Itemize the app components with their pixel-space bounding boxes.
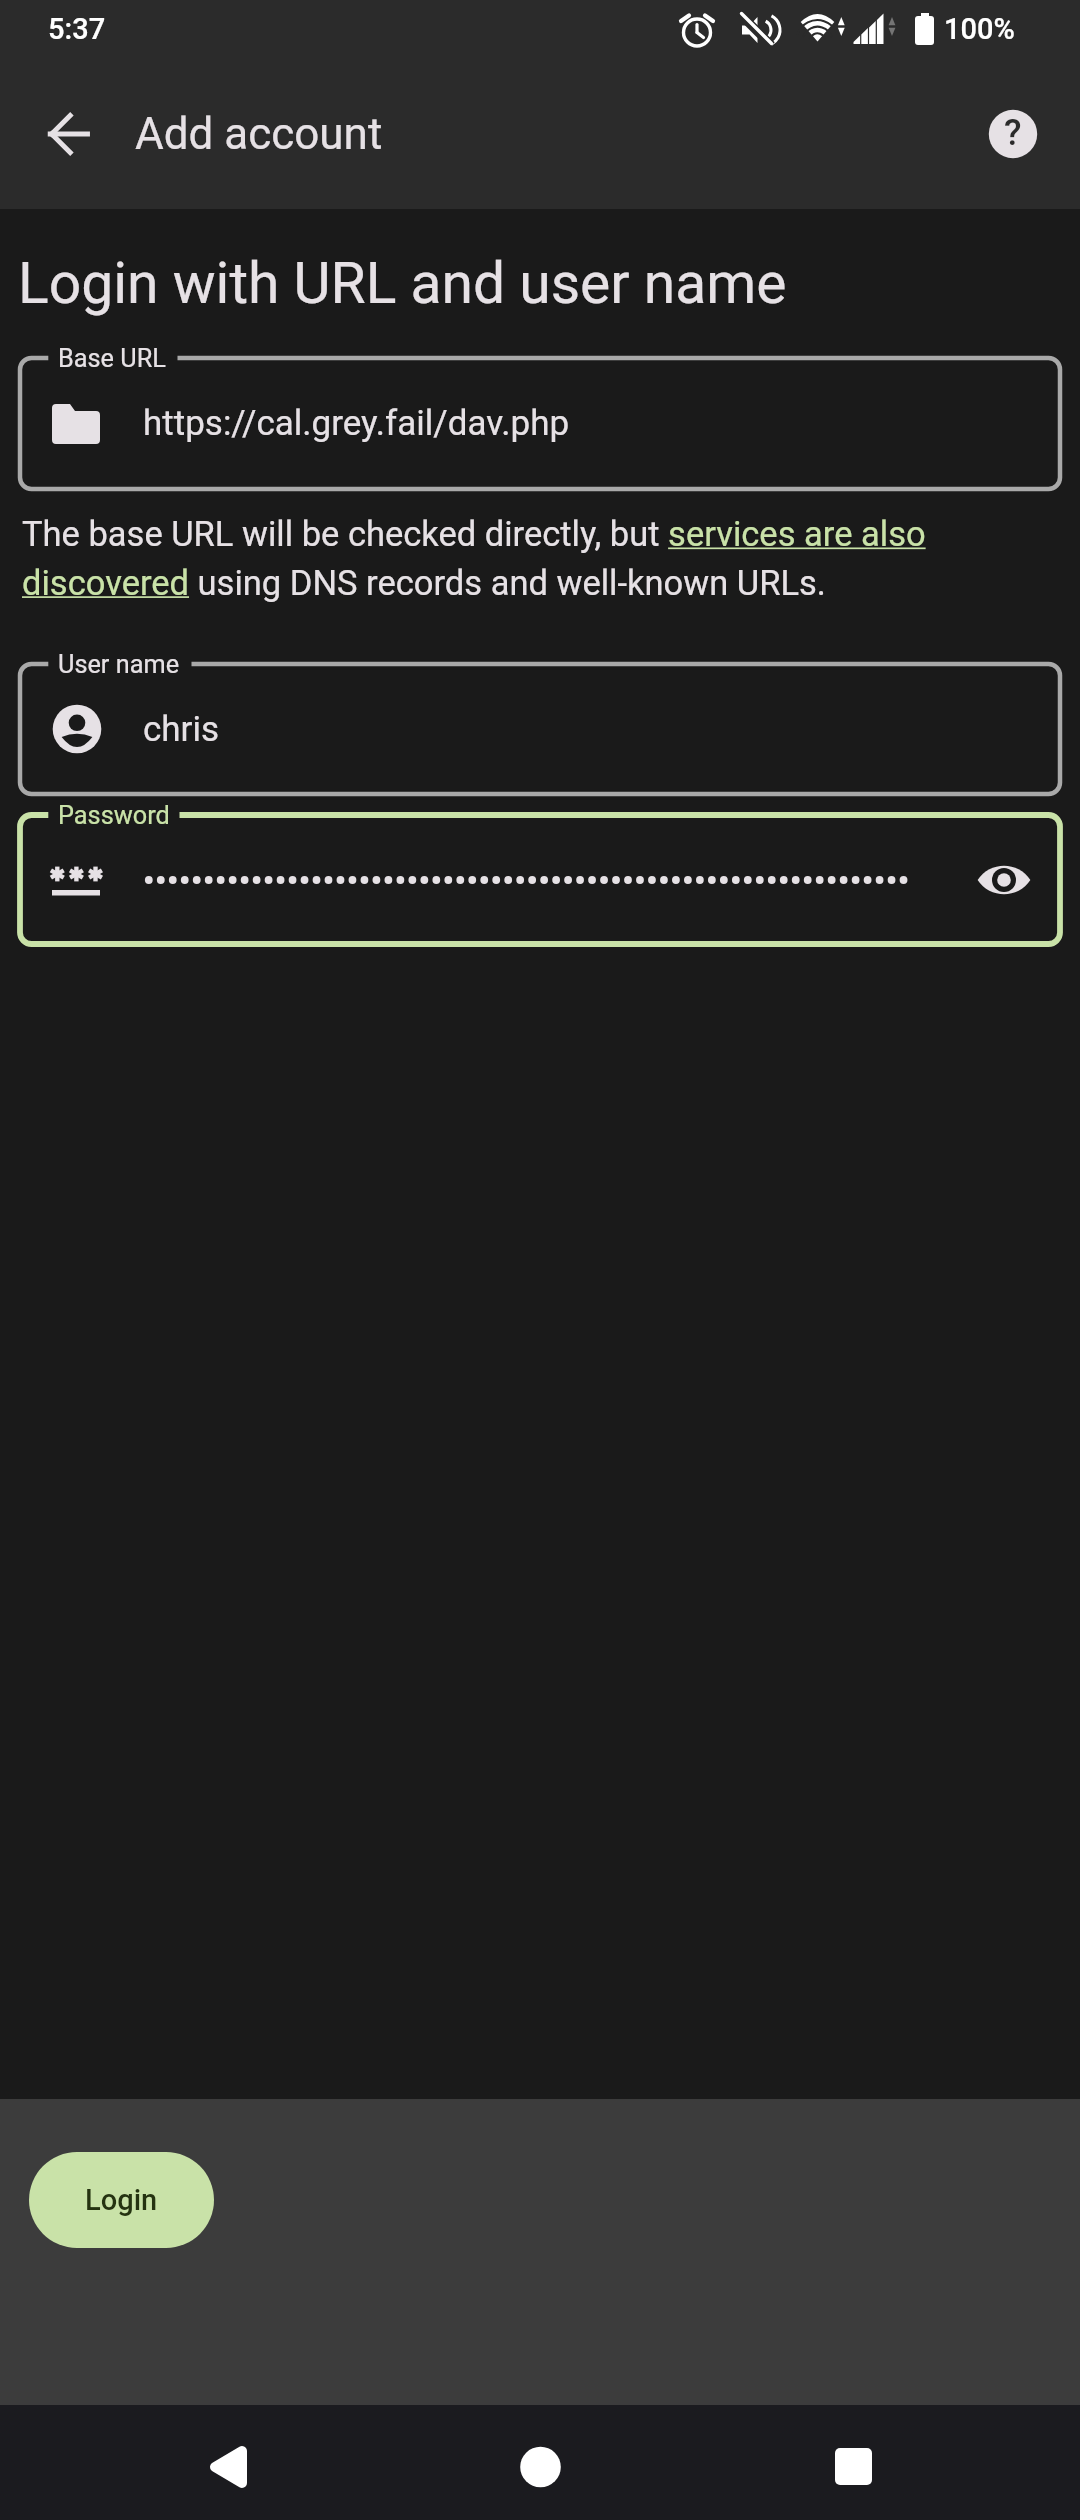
button[interactable]: Help: [965, 86, 1061, 182]
staticText: chris: [143, 709, 220, 750]
button[interactable]: https://cal.grey.fail/dav.php: [20, 358, 1060, 489]
button[interactable]: Home: [480, 2405, 600, 2520]
button[interactable]: Recent apps: [794, 2405, 914, 2520]
staticText: Login: [85, 2183, 158, 2217]
staticText: Password: [58, 801, 170, 831]
staticText: https://cal.grey.fail/dav.php: [143, 403, 570, 444]
staticText: Login with URL and user name: [18, 250, 787, 317]
button[interactable]: Navigate up: [21, 86, 117, 182]
staticText: User name: [58, 650, 180, 680]
staticText: 5:37: [48, 12, 106, 46]
button[interactable]: Back: [180, 2405, 300, 2520]
staticText: 100%: [944, 12, 1015, 46]
button[interactable]: chris: [20, 664, 1060, 794]
staticText: ?: [1004, 112, 1022, 154]
staticText: Base URL: [58, 344, 166, 374]
button[interactable]: Login: [29, 2152, 214, 2248]
staticText: The base URL will be checked directly, b…: [22, 514, 952, 603]
staticText: Add account: [135, 108, 383, 160]
button[interactable]: Password: [20, 815, 1060, 944]
